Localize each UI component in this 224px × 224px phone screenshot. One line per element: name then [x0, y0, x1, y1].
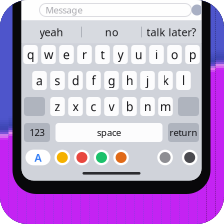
button[interactable]: s: [50, 71, 65, 90]
button[interactable]: Dictation: [157, 150, 173, 165]
button[interactable]: t: [95, 45, 110, 64]
staticText: d: [72, 72, 79, 88]
staticText: v: [108, 98, 114, 114]
staticText: g: [108, 72, 115, 88]
button[interactable]: Fitness: [113, 150, 129, 165]
staticText: u: [135, 46, 142, 62]
button[interactable]: e: [59, 45, 74, 64]
staticText: e: [63, 46, 70, 62]
staticText: q: [27, 46, 34, 62]
staticText: Message: [45, 4, 82, 16]
button[interactable]: n: [140, 97, 155, 116]
staticText: t: [100, 46, 104, 62]
button[interactable]: w: [41, 45, 56, 64]
staticText: 123: [29, 126, 44, 139]
button[interactable]: g: [104, 71, 119, 90]
button[interactable]: [178, 97, 199, 116]
button[interactable]: no: [82, 20, 141, 44]
staticText: m: [160, 98, 171, 114]
staticText: a: [36, 72, 43, 88]
button[interactable]: [24, 97, 45, 116]
staticText: y: [117, 46, 123, 62]
button[interactable]: j: [140, 71, 155, 90]
staticText: j: [146, 72, 149, 88]
staticText: o: [171, 46, 178, 62]
staticText: n: [144, 98, 151, 114]
staticText: A: [34, 150, 41, 165]
staticText: talk later?: [146, 25, 196, 39]
button[interactable]: q: [23, 45, 38, 64]
staticText: yeah: [39, 25, 63, 39]
button[interactable]: return: [168, 123, 199, 142]
button[interactable]: f: [86, 71, 101, 90]
button[interactable]: p: [185, 45, 200, 64]
button[interactable]: l: [176, 71, 191, 90]
button[interactable]: k: [158, 71, 173, 90]
staticText: space: [97, 126, 121, 139]
button[interactable]: yeah: [22, 20, 81, 44]
button[interactable]: i: [149, 45, 164, 64]
staticText: no: [105, 25, 118, 39]
button[interactable]: 123: [24, 123, 50, 142]
staticText: l: [182, 72, 185, 88]
staticText: h: [126, 72, 133, 88]
button[interactable]: m: [158, 97, 173, 116]
button[interactable]: b: [122, 97, 137, 116]
button[interactable]: v: [104, 97, 119, 116]
button[interactable]: a: [32, 71, 47, 90]
staticText: i: [155, 46, 158, 62]
staticText: f: [91, 72, 95, 88]
button[interactable]: space: [55, 123, 162, 142]
button[interactable]: r: [77, 45, 92, 64]
staticText: s: [54, 72, 60, 88]
button[interactable]: o: [167, 45, 182, 64]
button[interactable]: z: [50, 97, 65, 116]
button[interactable]: Photos: [74, 150, 90, 165]
button[interactable]: c: [86, 97, 101, 116]
button[interactable]: Emoji: [54, 150, 70, 165]
staticText: c: [90, 98, 96, 114]
button[interactable]: x: [68, 97, 83, 116]
button[interactable]: y: [113, 45, 128, 64]
staticText: b: [126, 98, 133, 114]
staticText: k: [162, 72, 168, 88]
staticText: z: [54, 98, 60, 114]
button[interactable]: h: [122, 71, 137, 90]
button[interactable]: talk later?: [142, 20, 201, 44]
button[interactable]: App Store: [25, 150, 50, 165]
button[interactable]: u: [131, 45, 146, 64]
staticText: w: [44, 46, 53, 62]
staticText: r: [82, 46, 87, 62]
button[interactable]: d: [68, 71, 83, 90]
button[interactable]: Cash: [94, 150, 109, 165]
staticText: return: [169, 126, 197, 139]
staticText: p: [189, 46, 196, 62]
staticText: x: [72, 98, 78, 114]
button[interactable]: More: [182, 150, 197, 165]
